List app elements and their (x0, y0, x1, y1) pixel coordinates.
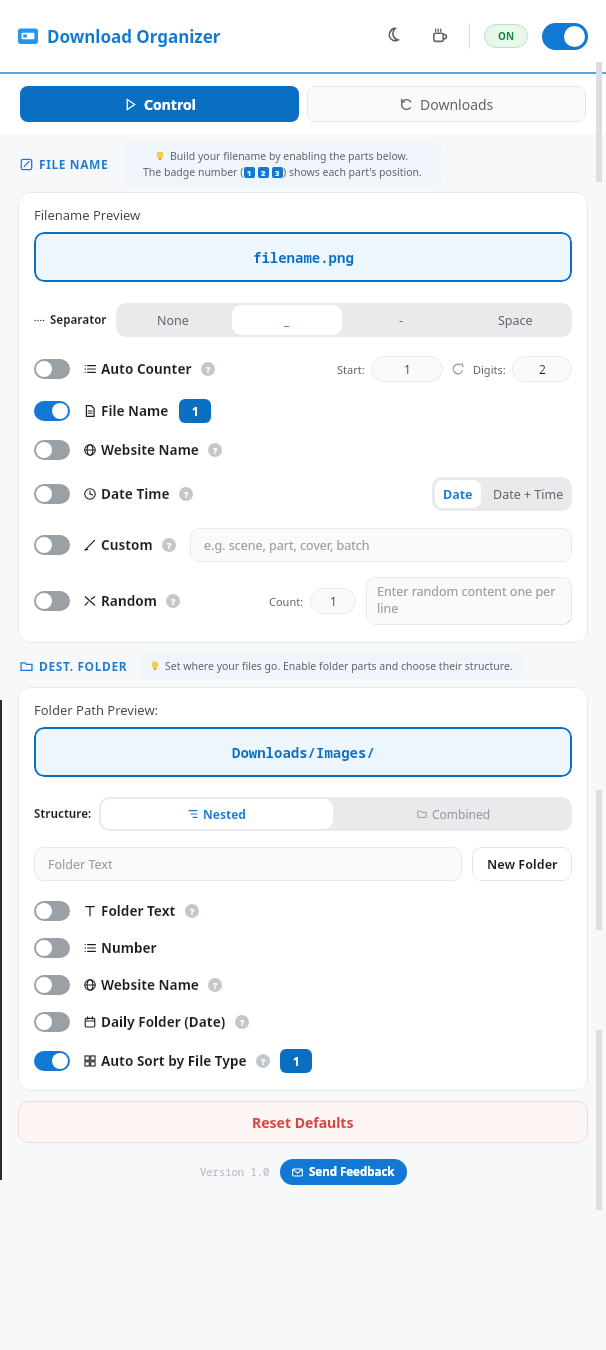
staticText: Digits: (473, 362, 506, 377)
button[interactable]: Toggle (34, 591, 70, 611)
staticText: Folder Text (101, 902, 176, 920)
staticText: Downloads (420, 95, 494, 114)
staticText: ) shows each part's position. (283, 165, 422, 179)
staticText: Filename Preview (34, 206, 141, 224)
button[interactable]: Toggle (34, 1049, 588, 1073)
staticText: Folder Path Preview: (34, 701, 159, 719)
staticText: File Name (101, 402, 169, 420)
button[interactable]: Toggle (34, 356, 588, 382)
button[interactable]: New Folder (472, 847, 572, 881)
staticText: 3 (275, 168, 280, 178)
button[interactable]: Help (201, 362, 215, 376)
staticText: Website Name (101, 976, 199, 994)
button[interactable]: Help (235, 1015, 249, 1029)
staticText: Build your filename by enabling the part… (170, 149, 409, 163)
staticText: ? (206, 363, 211, 375)
staticText: ? (167, 539, 172, 551)
button[interactable]: Toggle (34, 477, 588, 511)
staticText: Folder Text (48, 856, 113, 873)
button[interactable]: Toggle (34, 484, 70, 504)
staticText: Custom (101, 536, 153, 554)
button[interactable]: Toggle (34, 535, 70, 555)
staticText: - (399, 312, 404, 329)
staticText: Space (498, 312, 533, 329)
button[interactable]: Dark mode (379, 21, 409, 51)
button[interactable]: Toggle (34, 901, 70, 921)
button[interactable]: Date + Time (484, 477, 572, 511)
staticText: New Folder (487, 856, 558, 873)
button[interactable]: Help (185, 904, 199, 918)
staticText: Downloads/Images/ (232, 743, 375, 762)
button[interactable]: Help (166, 594, 180, 608)
button[interactable]: Toggle (34, 1012, 70, 1032)
button[interactable]: Help (179, 487, 193, 501)
button[interactable]: 1 (371, 356, 443, 382)
button[interactable]: Toggle (34, 440, 588, 460)
button[interactable]: Help (208, 978, 222, 992)
button[interactable]: Control (20, 86, 299, 122)
staticText: Separator (50, 312, 107, 328)
staticText: ? (213, 444, 218, 456)
staticText: Daily Folder (Date) (101, 1013, 226, 1031)
button[interactable]: Master switch (542, 23, 588, 50)
button[interactable]: Send Feedback (280, 1159, 407, 1185)
button[interactable]: Toggle (34, 1012, 588, 1032)
staticText: Structure: (34, 806, 92, 822)
staticText: Auto Counter (101, 360, 192, 378)
button[interactable]: 2 (512, 356, 572, 382)
button[interactable]: e.g. scene, part, cover, batch (190, 528, 572, 562)
button[interactable]: Date (435, 480, 481, 508)
button[interactable]: _ (232, 305, 342, 335)
staticText: Random (101, 592, 157, 610)
staticText: e.g. scene, part, cover, batch (204, 537, 370, 554)
staticText: 1 (192, 403, 199, 419)
staticText: 2 (539, 361, 546, 377)
button[interactable]: Nested (101, 799, 333, 829)
staticText: ? (171, 595, 176, 607)
staticText: Number (101, 939, 157, 957)
button[interactable]: - (344, 303, 458, 337)
staticText: Count: (269, 594, 304, 609)
button[interactable]: Combined (335, 797, 572, 831)
button[interactable]: Help (256, 1054, 270, 1068)
staticText: FILE NAME (39, 156, 109, 172)
staticText: 1 (247, 168, 252, 178)
staticText: Version 1.0 (200, 1165, 270, 1179)
button[interactable]: Folder Text (34, 847, 462, 881)
staticText: Auto Sort by File Type (101, 1052, 247, 1070)
button[interactable]: Toggle (34, 399, 588, 423)
button[interactable]: Toggle (34, 975, 588, 995)
button[interactable]: Buy me a coffee (425, 21, 455, 51)
button[interactable]: Toggle (34, 528, 588, 562)
staticText: 1 (293, 1053, 300, 1069)
staticText: Set where your files go. Enable folder p… (165, 659, 513, 673)
staticText: filename.png (253, 248, 354, 267)
button[interactable]: Toggle (34, 938, 588, 958)
button[interactable]: Enter random content one per line (366, 577, 572, 625)
button[interactable]: Toggle (34, 440, 70, 460)
button[interactable]: Toggle (34, 401, 70, 421)
button[interactable]: Reset Defaults (18, 1101, 588, 1143)
staticText: _ (284, 311, 290, 329)
button[interactable]: Toggle (34, 1051, 70, 1071)
button[interactable]: Help (162, 538, 176, 552)
staticText: ? (261, 1055, 266, 1067)
staticText: 2 (261, 168, 266, 178)
button[interactable]: Help (208, 443, 222, 457)
button[interactable]: None (116, 303, 230, 337)
button[interactable]: ON (484, 24, 528, 48)
staticText: Reset Defaults (252, 1113, 354, 1132)
button[interactable]: Toggle (34, 359, 70, 379)
button[interactable]: Downloads (307, 86, 586, 122)
button[interactable]: Toggle (34, 901, 588, 921)
staticText: ? (184, 488, 189, 500)
staticText: Combined (432, 806, 491, 822)
button[interactable]: Toggle (34, 577, 588, 625)
staticText: Download Organizer (47, 25, 221, 48)
button[interactable]: 1 (310, 588, 356, 614)
staticText: Control (144, 95, 196, 114)
button[interactable]: Space (458, 303, 572, 337)
button[interactable]: Toggle (34, 975, 70, 995)
staticText: 1 (330, 593, 337, 609)
button[interactable]: Toggle (34, 938, 70, 958)
